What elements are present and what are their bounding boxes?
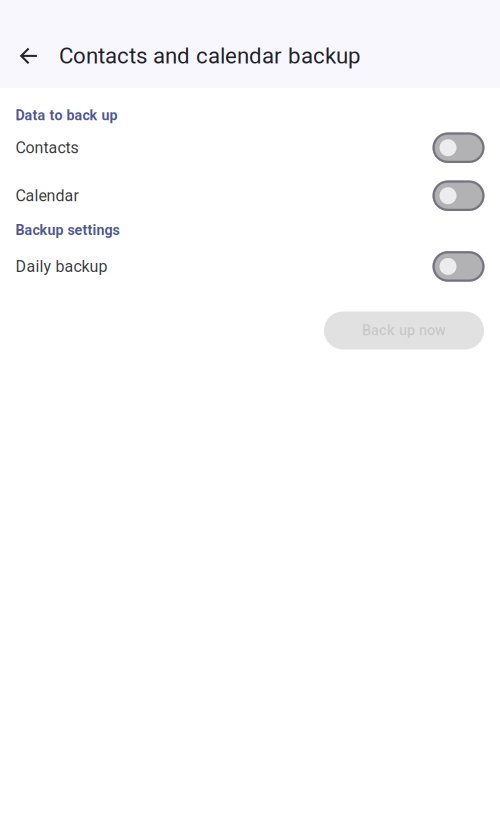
button[interactable]: Contacts xyxy=(0,124,500,172)
button[interactable]: Back xyxy=(13,40,45,72)
staticText: Back up now xyxy=(362,322,446,339)
button[interactable]: Back up now xyxy=(324,311,484,349)
button[interactable]: Daily backup xyxy=(0,242,500,290)
button[interactable]: Calendar xyxy=(0,172,500,220)
staticText: Data to back up xyxy=(16,107,118,124)
staticText: Backup settings xyxy=(16,222,120,238)
staticText: Daily backup xyxy=(16,257,108,276)
staticText: Contacts and calendar backup xyxy=(59,43,361,69)
staticText: Calendar xyxy=(16,186,79,205)
staticText: Contacts xyxy=(16,138,79,157)
